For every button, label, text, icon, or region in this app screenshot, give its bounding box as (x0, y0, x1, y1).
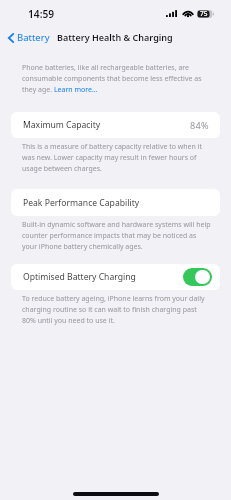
staticText: 14:59 (28, 7, 55, 21)
button[interactable]: Peak Performance Capability (11, 189, 220, 216)
staticText: 84% (190, 119, 209, 131)
staticText: Peak Performance Capability (23, 197, 140, 209)
staticText: Built-in dynamic software and hardware s… (22, 220, 211, 251)
staticText: 75 (200, 9, 208, 18)
staticText: Phone batteries, like all rechargeable b… (22, 63, 202, 94)
button[interactable]: Optimised Battery Charging toggle (183, 268, 212, 286)
staticText: Battery Health & Charging (57, 31, 173, 43)
staticText: Maximum Capacity (23, 119, 101, 131)
button[interactable]: Optimised Battery Charging (11, 264, 220, 290)
staticText: This is a measure of battery capacity re… (22, 142, 203, 173)
staticText: To reduce battery ageing, iPhone learns … (22, 294, 205, 325)
button[interactable]: Maximum Capacity (11, 112, 220, 138)
staticText: Optimised Battery Charging (23, 271, 136, 283)
button[interactable]: Battery (7, 31, 50, 44)
staticText: Battery (17, 31, 50, 44)
